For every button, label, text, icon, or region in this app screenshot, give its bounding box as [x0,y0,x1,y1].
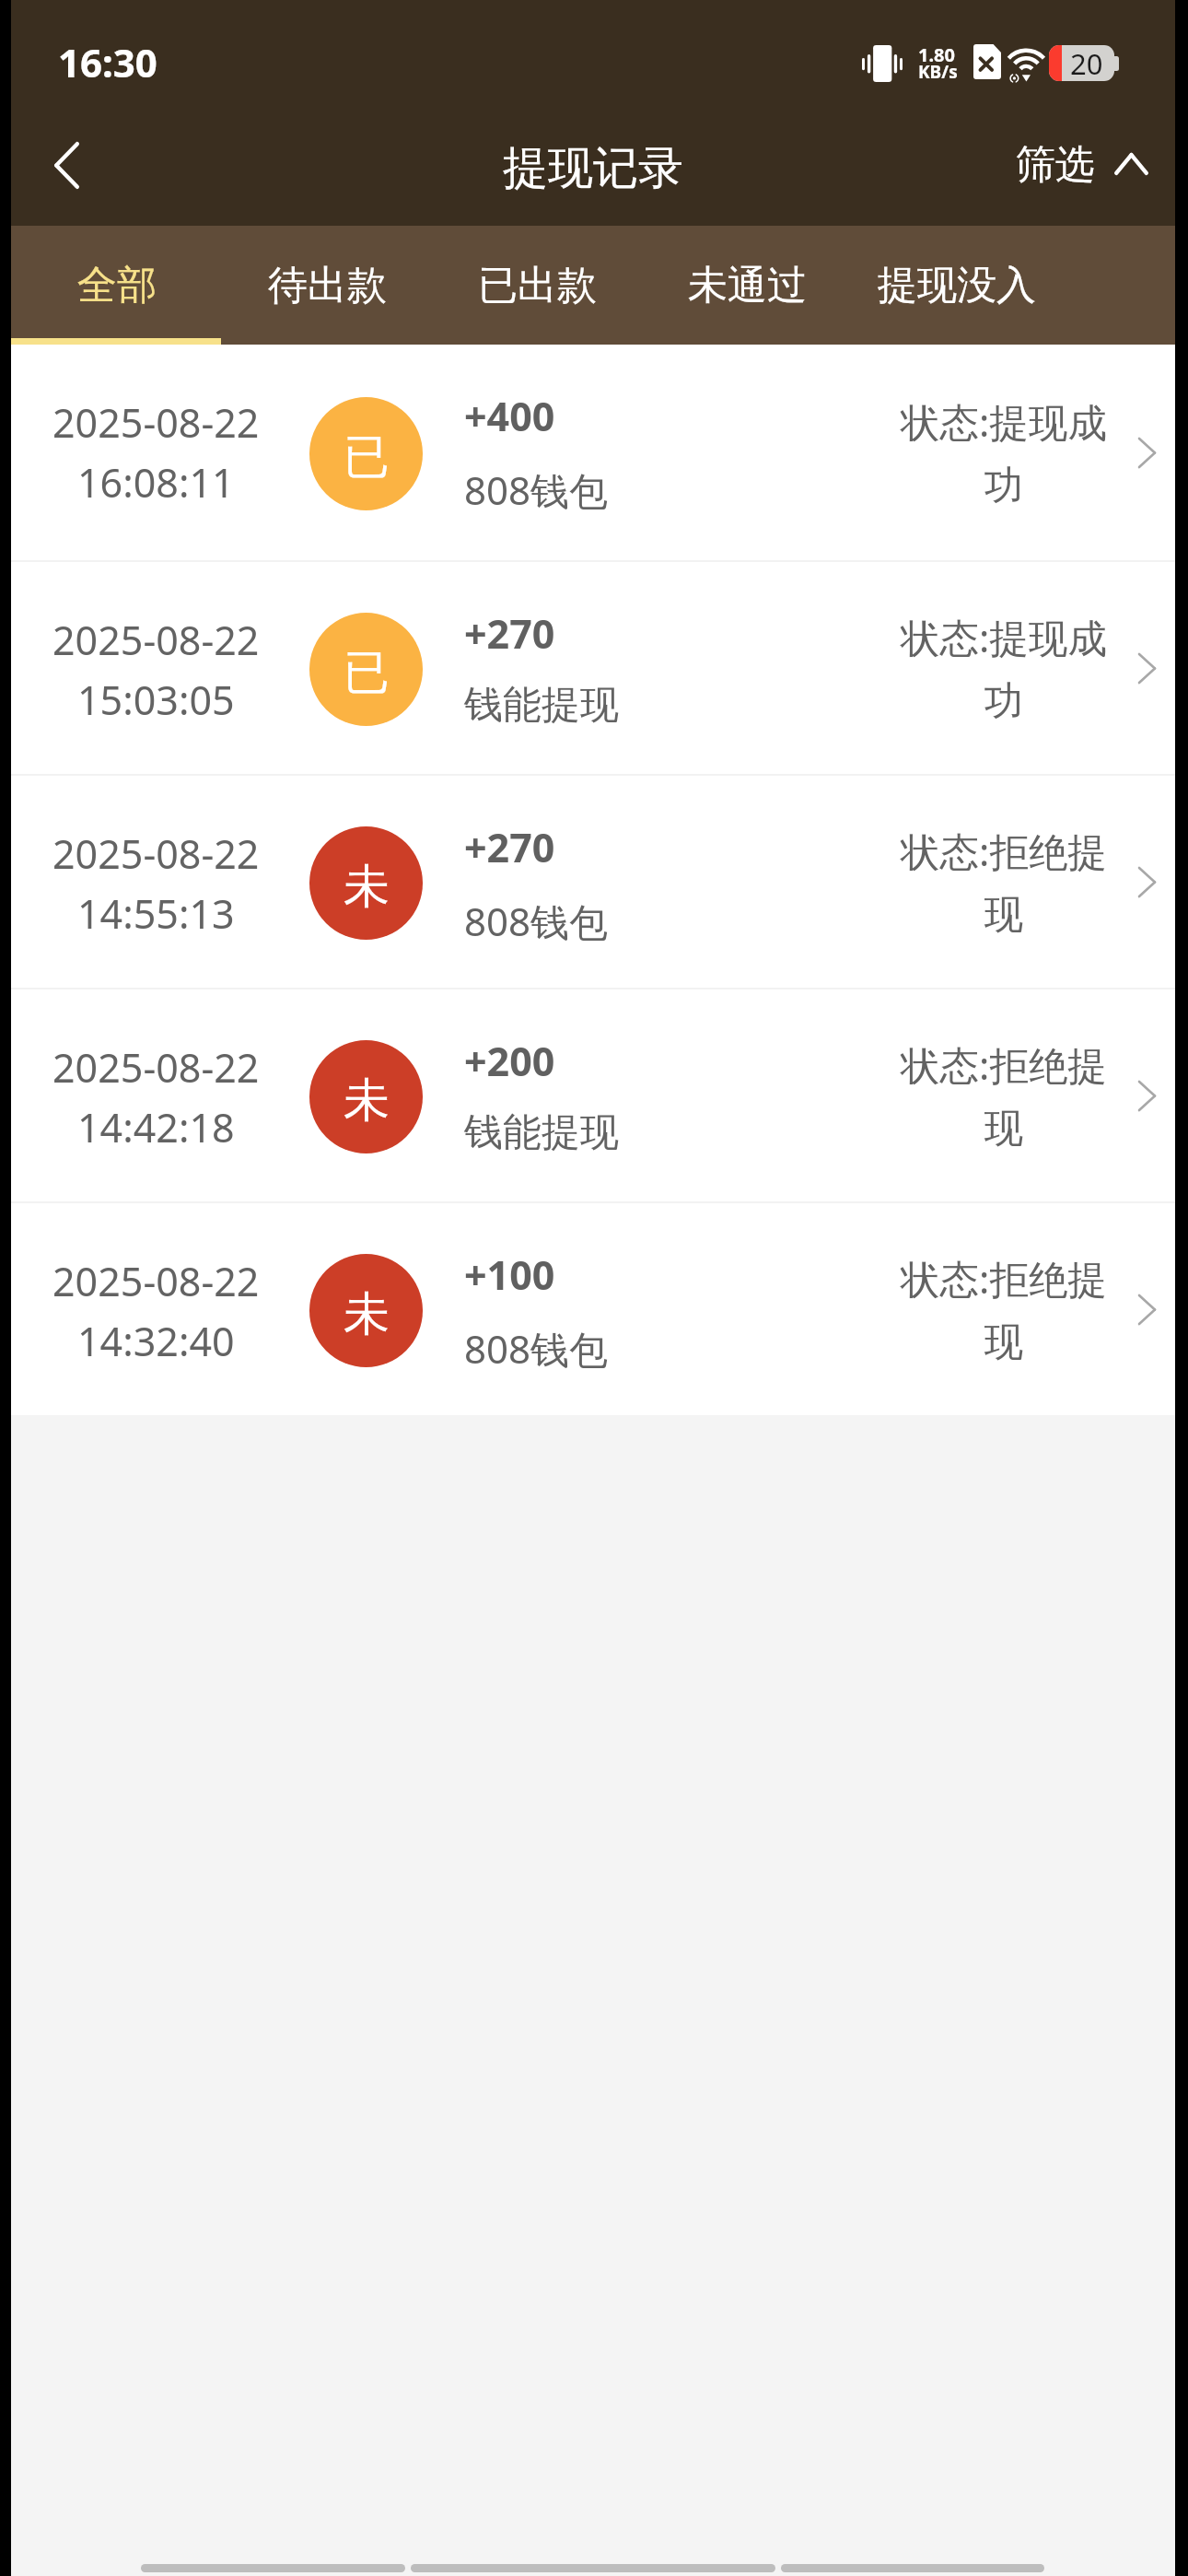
staticText: 已 [344,428,390,486]
staticText: 全部 [77,261,157,310]
staticText: 1.80 [918,42,955,67]
staticText: 808钱包 [464,463,609,516]
staticText: 15:03:05 [77,673,235,727]
button[interactable]: 筛选 [1016,111,1158,217]
staticText: 2025-08-22 [52,613,260,667]
button[interactable]: 2025-08-22 [11,345,1175,560]
staticText: 状态:拒绝提现 [898,1252,1110,1367]
button[interactable]: 2025-08-22 [11,776,1175,988]
staticText: 16:08:11 [77,455,235,509]
staticText: +400 [464,389,555,443]
button[interactable]: 2025-08-22 [11,1203,1175,1415]
staticText: 钱能提现 [464,1108,619,1157]
staticText: KB/s [918,60,958,84]
staticText: 状态:提现成功 [898,395,1110,510]
staticText: 待出款 [268,261,387,310]
staticText: 14:55:13 [77,886,235,941]
staticText: 16:30 [58,36,157,88]
button[interactable]: 未通过 [642,226,852,345]
staticText: 2025-08-22 [52,395,260,450]
staticText: +270 [464,606,555,661]
staticText: 提现记录 [503,140,683,197]
staticText: 未通过 [688,261,807,310]
staticText: 14:42:18 [77,1100,235,1154]
button[interactable]: Back [13,114,120,216]
staticText: 808钱包 [464,895,609,947]
staticText: 钱能提现 [464,681,619,730]
staticText: 筛选 [1016,140,1095,190]
staticText: 2025-08-22 [52,1040,260,1095]
staticText: 2025-08-22 [52,826,260,881]
staticText: 未 [344,1071,390,1130]
staticText: 已出款 [478,261,597,310]
button[interactable]: 全部 [12,226,222,345]
staticText: 状态:拒绝提现 [898,1038,1110,1153]
staticText: 20 [1070,45,1103,80]
staticText: 已 [344,644,390,702]
staticText: 未 [344,1285,390,1343]
staticText: +270 [464,820,555,874]
staticText: +200 [464,1034,555,1088]
staticText: 808钱包 [464,1322,609,1375]
staticText: 2025-08-22 [52,1254,260,1308]
button[interactable]: 提现没入 [852,226,1062,345]
staticText: 未 [344,858,390,916]
button[interactable]: 2025-08-22 [11,562,1175,774]
staticText: 14:32:40 [77,1314,235,1368]
button[interactable]: 2025-08-22 [11,989,1175,1201]
staticText: 状态:拒绝提现 [898,825,1110,940]
staticText: +100 [464,1247,555,1302]
staticText: 提现没入 [878,261,1036,310]
button[interactable]: 已出款 [432,226,642,345]
button[interactable]: 待出款 [222,226,432,345]
staticText: 状态:提现成功 [898,611,1110,726]
